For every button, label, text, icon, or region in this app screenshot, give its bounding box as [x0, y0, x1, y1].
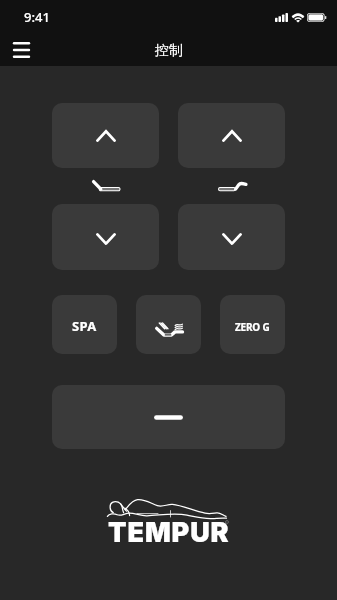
button[interactable]: Menu	[6, 35, 36, 65]
button[interactable]: Raise feet	[178, 103, 285, 168]
button[interactable]: Lower feet	[178, 204, 285, 270]
button[interactable]: Lower head	[52, 204, 159, 270]
staticText: 控制	[155, 42, 183, 60]
button[interactable]: Massage	[136, 295, 201, 354]
staticText: SPA	[72, 317, 97, 335]
button[interactable]: Zero G	[220, 295, 285, 354]
button[interactable]: Flat	[52, 385, 285, 449]
staticText: ZERO G	[235, 320, 270, 334]
button[interactable]: SPA	[52, 295, 117, 354]
staticText: TEMPUR	[108, 516, 230, 549]
button[interactable]: Raise head	[52, 103, 159, 168]
staticText: 9:41	[24, 8, 50, 26]
